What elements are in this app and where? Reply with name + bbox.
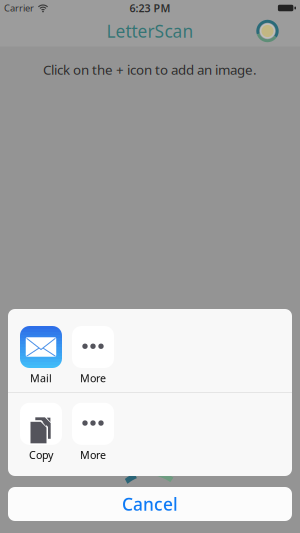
staticText: More <box>80 448 106 462</box>
staticText: Carrier <box>4 2 34 14</box>
staticText: Click on the + icon to add an image. <box>43 61 257 78</box>
button[interactable]: Mail <box>20 326 62 385</box>
button[interactable]: More <box>72 326 114 385</box>
staticText: Cancel <box>122 492 178 515</box>
staticText: 6:23 PM <box>129 1 170 15</box>
button[interactable]: LetterScan logo <box>256 19 279 42</box>
button[interactable]: More <box>72 403 114 462</box>
staticText: Copy <box>29 448 53 462</box>
button[interactable]: Copy <box>20 403 62 462</box>
staticText: Mail <box>30 371 52 385</box>
staticText: LetterScan <box>106 19 193 42</box>
button[interactable]: Cancel <box>8 487 292 521</box>
staticText: More <box>80 371 106 385</box>
